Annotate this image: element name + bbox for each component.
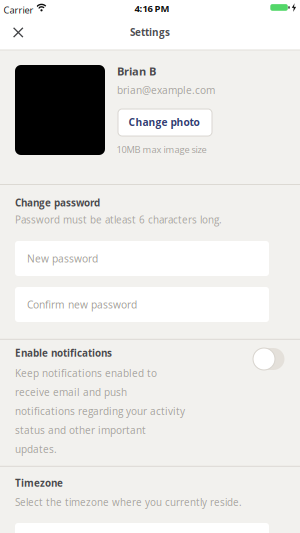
staticText: Select the timezone where you currently …	[15, 495, 242, 509]
staticText: Carrier	[3, 4, 33, 16]
staticText: updates.	[15, 442, 57, 456]
button[interactable]: Enable notifications	[253, 348, 284, 370]
staticText: brian@example.com	[117, 83, 215, 97]
staticText: Confirm new password	[27, 298, 137, 311]
staticText: Settings	[130, 25, 170, 39]
staticText: New password	[27, 252, 98, 265]
staticText: Password must be atleast 6 characters lo…	[15, 213, 222, 226]
staticText: receive email and push	[15, 385, 127, 399]
staticText: Brian B	[117, 64, 156, 78]
staticText: Change password	[15, 196, 100, 209]
staticText: 10MB max image size	[116, 143, 206, 156]
staticText: Timezone	[15, 476, 63, 489]
button[interactable]: New password	[15, 241, 269, 276]
staticText: Keep notifications enabled to	[15, 366, 157, 380]
staticText: Change photo	[128, 115, 199, 129]
button[interactable]: Change photo	[118, 109, 212, 136]
button[interactable]: Confirm new password	[15, 287, 269, 322]
staticText: Enable notifications	[15, 346, 112, 359]
staticText: notifications regarding your activity	[15, 404, 185, 418]
staticText: status and other important	[15, 423, 146, 437]
staticText: 4:16 PM	[134, 2, 169, 15]
button[interactable]: Close	[5, 19, 31, 46]
